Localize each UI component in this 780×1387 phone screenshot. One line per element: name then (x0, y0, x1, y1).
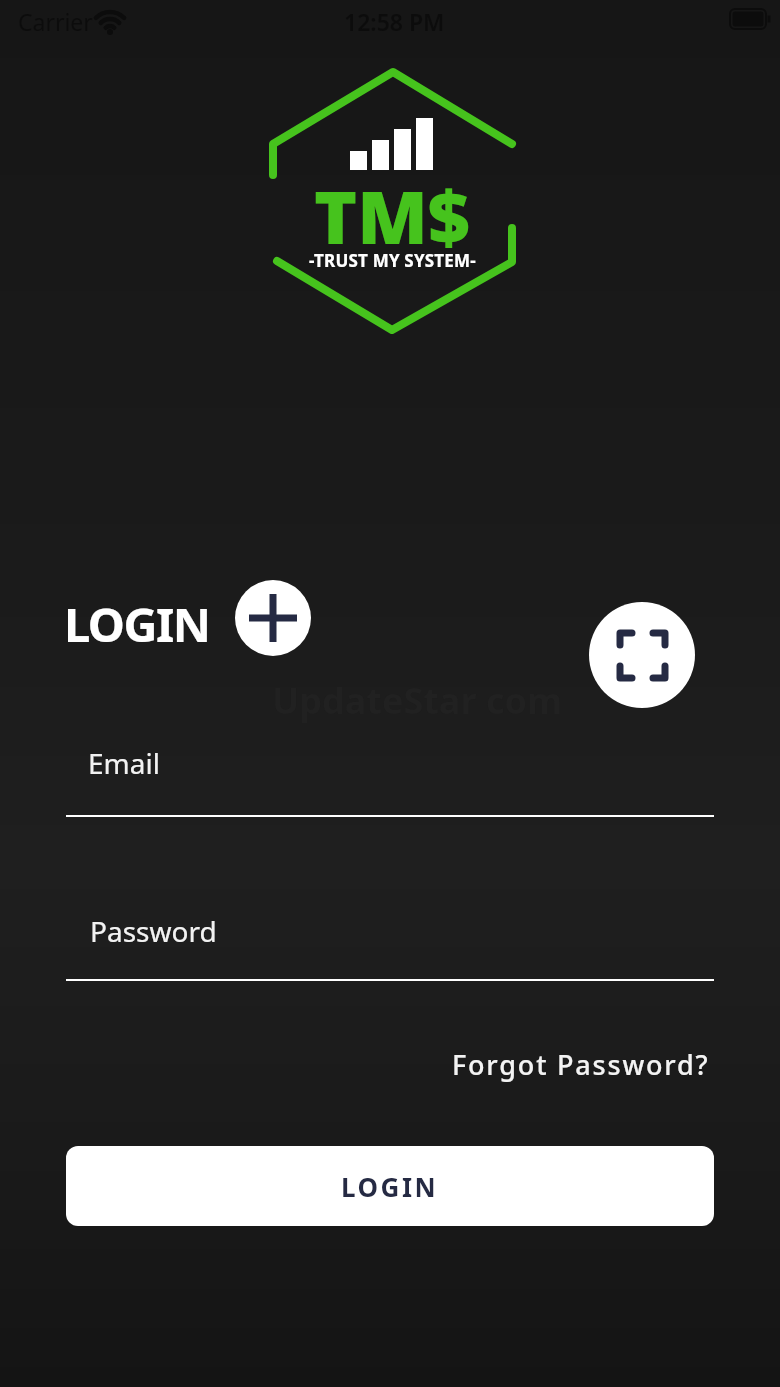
staticText: 12:58 PM (344, 6, 445, 37)
button[interactable]: LOGIN (66, 1146, 714, 1226)
staticText: Email (88, 744, 160, 782)
staticText: TM$ (314, 166, 470, 265)
staticText: LOGIN (64, 592, 210, 656)
button[interactable] (66, 904, 714, 982)
staticText: Carrier (18, 6, 93, 37)
staticText: -TRUST MY SYSTEM- (309, 249, 476, 272)
button[interactable] (589, 602, 695, 708)
staticText: Password (90, 912, 217, 950)
staticText: Forgot Password? (452, 1046, 710, 1083)
button[interactable] (235, 580, 311, 656)
button[interactable]: Forgot Password? (452, 1046, 710, 1083)
staticText: LOGIN (341, 1169, 439, 1204)
button[interactable] (66, 736, 714, 818)
